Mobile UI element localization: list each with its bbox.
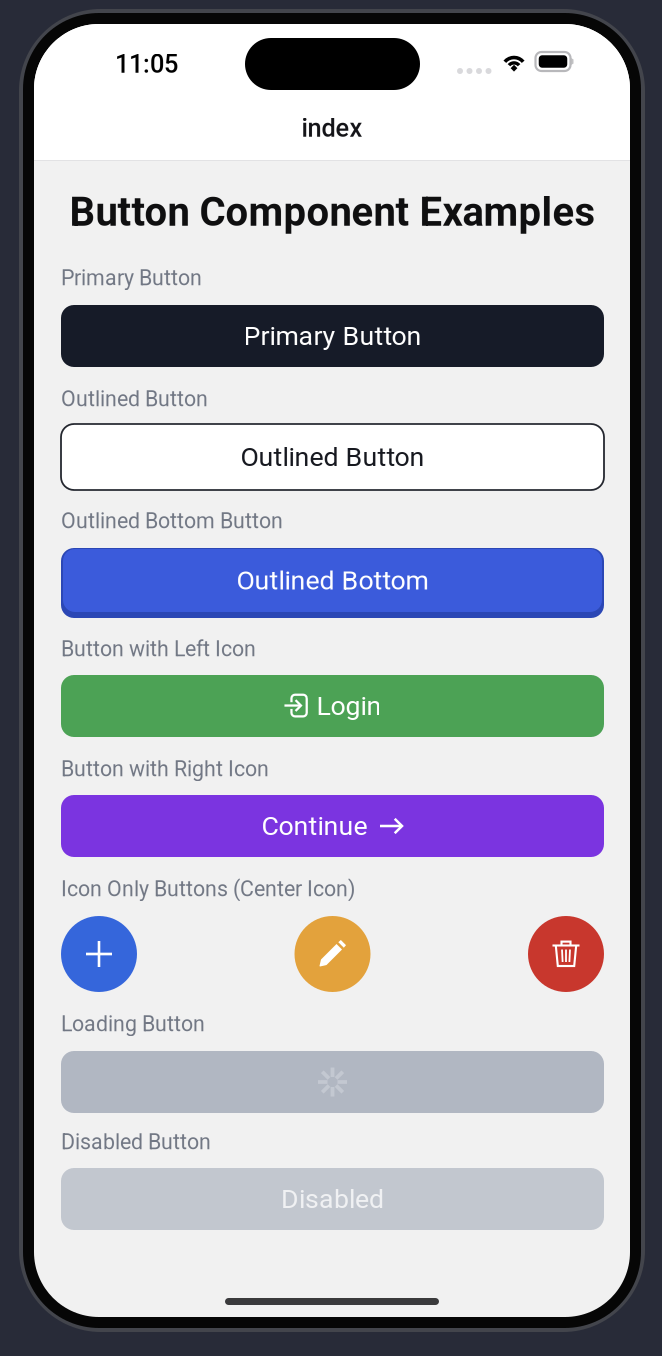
button[interactable]: Continue bbox=[61, 795, 604, 857]
staticText: Outlined Button bbox=[61, 386, 208, 411]
button[interactable]: Outlined Button bbox=[61, 424, 604, 490]
staticText: Continue bbox=[261, 810, 367, 842]
staticText: Button with Right Icon bbox=[61, 756, 269, 781]
staticText: Login bbox=[316, 690, 381, 722]
button[interactable]: Add bbox=[61, 916, 137, 992]
button[interactable]: Edit bbox=[294, 916, 370, 992]
button[interactable]: Outlined Bottom bbox=[61, 548, 604, 618]
staticText: 11:05 bbox=[115, 49, 178, 79]
staticText: Outlined Bottom bbox=[236, 565, 428, 596]
staticText: Disabled bbox=[281, 1183, 384, 1215]
staticText: Primary Button bbox=[61, 265, 202, 290]
staticText: Outlined Button bbox=[240, 441, 424, 473]
button[interactable]: Loading bbox=[61, 1051, 604, 1113]
staticText: index bbox=[301, 113, 362, 143]
button[interactable]: Disabled bbox=[61, 1168, 604, 1230]
staticText: Primary Button bbox=[243, 320, 421, 352]
staticText: Loading Button bbox=[61, 1011, 205, 1036]
staticText: Outlined Bottom Button bbox=[61, 508, 283, 533]
staticText: Disabled Button bbox=[61, 1129, 211, 1154]
button[interactable]: Primary Button bbox=[61, 305, 604, 367]
button[interactable]: Delete bbox=[528, 916, 604, 992]
button[interactable]: Login bbox=[61, 675, 604, 737]
staticText: Icon Only Buttons (Center Icon) bbox=[61, 876, 355, 901]
staticText: Button Component Examples bbox=[69, 189, 595, 235]
staticText: Button with Left Icon bbox=[61, 636, 256, 661]
